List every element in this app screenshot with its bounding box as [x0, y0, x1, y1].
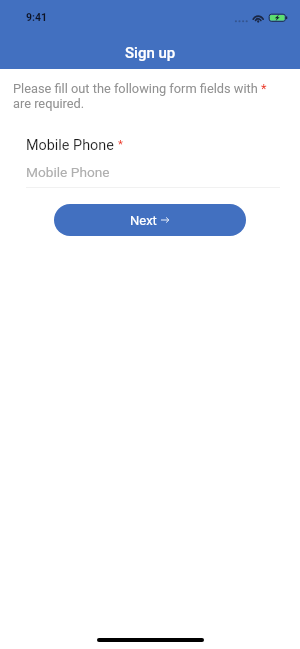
staticText: 9:41 [26, 11, 48, 24]
staticText: Mobile Phone [26, 137, 114, 154]
button[interactable]: Mobile Phone input field [26, 162, 280, 188]
button[interactable]: Next [54, 204, 246, 236]
staticText: Please fill out the following form field… [13, 81, 271, 111]
staticText: Sign up [125, 44, 176, 62]
staticText: Mobile Phone [26, 164, 110, 180]
staticText: Next [130, 212, 157, 228]
staticText: * [118, 135, 123, 152]
